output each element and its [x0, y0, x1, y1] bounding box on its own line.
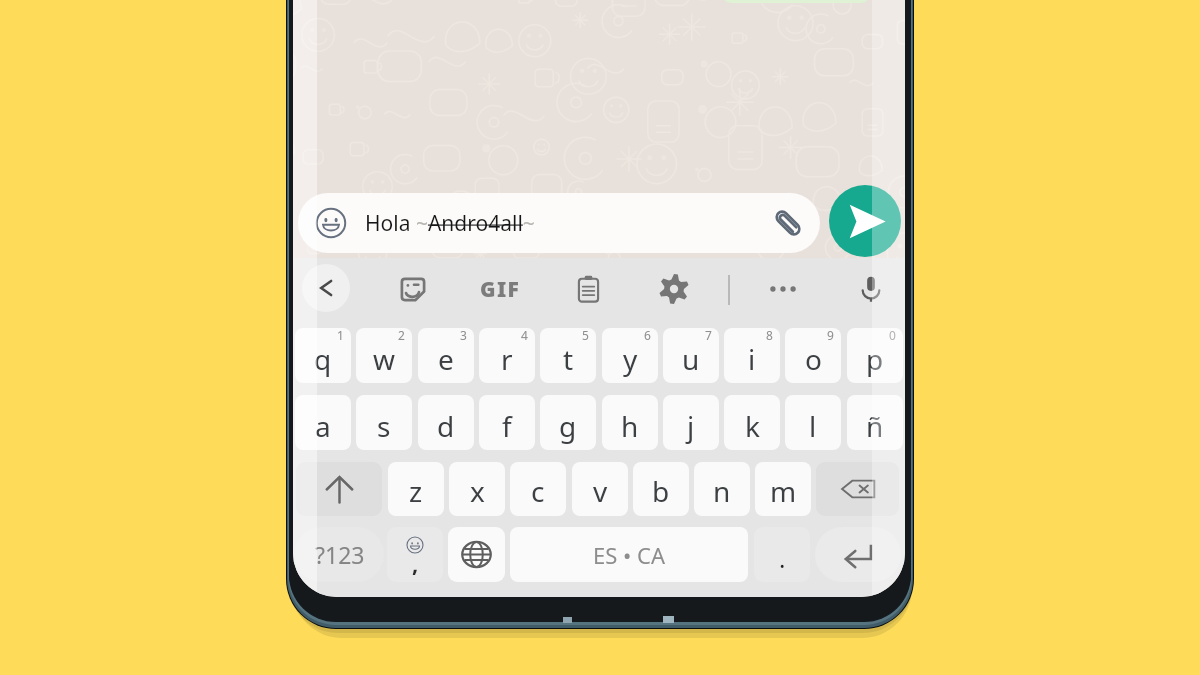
- button[interactable]: i: [724, 328, 780, 383]
- button[interactable]: j: [663, 395, 719, 450]
- button[interactable]: t: [540, 328, 596, 383]
- button[interactable]: p: [847, 328, 903, 383]
- button[interactable]: c: [510, 462, 566, 516]
- staticText: 6: [644, 328, 651, 343]
- staticText: 5: [582, 328, 589, 343]
- button[interactable]: o: [785, 328, 841, 383]
- staticText: 4: [521, 328, 528, 343]
- button[interactable]: z: [388, 462, 444, 516]
- button[interactable]: ñ: [847, 395, 903, 450]
- button[interactable]: More options: [759, 265, 807, 313]
- button[interactable]: w: [356, 328, 412, 383]
- staticText: i: [748, 340, 756, 378]
- staticText: h: [621, 407, 639, 445]
- staticText: j: [687, 407, 695, 445]
- staticText: d: [437, 407, 455, 445]
- button[interactable]: r: [479, 328, 535, 383]
- staticText: l: [809, 407, 817, 445]
- button[interactable]: Clipboard: [564, 265, 612, 313]
- button[interactable]: Enter: [815, 527, 901, 582]
- staticText: 1: [337, 328, 344, 343]
- staticText: Hola ~Andro4all~: [365, 209, 535, 238]
- button[interactable]: f: [479, 395, 535, 450]
- staticText: 9: [827, 328, 834, 343]
- staticText: t: [563, 340, 574, 378]
- staticText: ñ: [866, 407, 884, 445]
- button[interactable]: g: [540, 395, 596, 450]
- button[interactable]: Backspace: [816, 462, 899, 516]
- button[interactable]: ES • CA: [510, 527, 748, 582]
- staticText: q: [314, 340, 332, 378]
- staticText: s: [377, 407, 391, 445]
- button[interactable]: Emoji and comma: [387, 527, 443, 582]
- staticText: m: [770, 472, 797, 510]
- staticText: r: [501, 340, 513, 378]
- staticText: 7: [705, 328, 712, 343]
- button[interactable]: q: [295, 328, 351, 383]
- staticText: GIF: [480, 275, 521, 304]
- button[interactable]: v: [572, 462, 628, 516]
- button[interactable]: b: [633, 462, 689, 516]
- staticText: b: [652, 472, 670, 510]
- staticText: ,: [412, 548, 419, 578]
- staticText: n: [713, 472, 731, 510]
- staticText: v: [593, 472, 608, 510]
- staticText: x: [470, 472, 485, 510]
- button[interactable]: ?123: [294, 527, 384, 582]
- staticText: z: [409, 472, 423, 510]
- staticText: w: [373, 340, 396, 378]
- staticText: 3: [460, 328, 467, 343]
- staticText: e: [438, 340, 454, 378]
- button[interactable]: Change language: [448, 527, 505, 582]
- button[interactable]: h: [602, 395, 658, 450]
- staticText: 2: [398, 328, 405, 343]
- button[interactable]: n: [694, 462, 750, 516]
- button[interactable]: Send: [829, 185, 901, 257]
- button[interactable]: Shift: [296, 462, 382, 516]
- button[interactable]: Voice input: [847, 265, 895, 313]
- staticText: 8: [766, 328, 773, 343]
- button[interactable]: m: [755, 462, 811, 516]
- button[interactable]: u: [663, 328, 719, 383]
- button[interactable]: a: [295, 395, 351, 450]
- button[interactable]: x: [449, 462, 505, 516]
- button[interactable]: Back: [302, 264, 350, 312]
- staticText: .: [779, 542, 786, 575]
- button[interactable]: k: [724, 395, 780, 450]
- staticText: u: [682, 340, 700, 378]
- staticText: ?123: [315, 539, 365, 570]
- staticText: g: [559, 407, 577, 445]
- button[interactable]: Hola ~Andro4all~: [298, 193, 820, 253]
- button[interactable]: .: [754, 527, 810, 582]
- staticText: 0: [889, 328, 896, 343]
- button[interactable]: l: [785, 395, 841, 450]
- staticText: ES • CA: [593, 540, 665, 570]
- staticText: c: [531, 472, 545, 510]
- button[interactable]: Settings: [650, 265, 698, 313]
- staticText: p: [866, 340, 884, 378]
- button[interactable]: y: [602, 328, 658, 383]
- staticText: o: [805, 340, 822, 378]
- button[interactable]: Stickers: [389, 265, 437, 313]
- button[interactable]: s: [356, 395, 412, 450]
- staticText: a: [315, 407, 331, 445]
- staticText: y: [623, 340, 638, 378]
- staticText: k: [745, 407, 760, 445]
- button[interactable]: d: [418, 395, 474, 450]
- button[interactable]: GIF: [473, 265, 527, 313]
- button[interactable]: e: [418, 328, 474, 383]
- staticText: f: [502, 407, 512, 445]
